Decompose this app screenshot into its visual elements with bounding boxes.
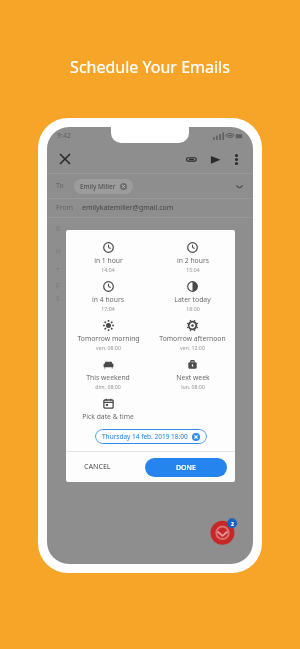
button[interactable]: Tomorrow afternoon [150,316,235,355]
staticText: p [56,280,60,289]
staticText: 17:04 [101,305,115,312]
staticText: Emily Miller [80,182,116,191]
staticText: This weekend [86,373,130,382]
button[interactable]: in 1 hour [66,238,150,277]
staticText: DONE [176,463,196,473]
staticText: H [56,247,61,256]
staticText: 14:04 [101,266,115,273]
staticText: Tomorrow afternoon [159,334,226,343]
button[interactable]: More options [228,151,244,167]
button[interactable]: Next week [150,355,235,394]
staticText: ven. 12:00 [180,344,205,351]
staticText: emilykatemiller@gmail.com [82,203,174,213]
button[interactable]: in 2 hours [150,238,235,277]
button[interactable]: Tomorrow morning [66,316,150,355]
button[interactable]: Attach [182,150,200,168]
staticText: S [56,294,60,303]
button[interactable]: Send [206,150,224,168]
staticText: in 2 hours [177,256,209,265]
staticText: in 1 hour [94,256,123,265]
button[interactable]: Pick date & time [66,394,150,425]
staticText: in 4 hours [92,295,124,304]
staticText: Tomorrow morning [77,334,140,343]
staticText: 15:04 [186,266,200,273]
staticText: Thursday 14 feb. 2019 18:00 [102,432,188,441]
staticText: From [56,203,74,213]
staticText: Next week [176,373,210,382]
button[interactable]: CANCEL [74,457,121,477]
staticText: 9:42 [57,131,71,141]
staticText: To [56,181,64,191]
button[interactable]: This weekend [66,355,150,394]
button[interactable]: Expand recipients [235,182,244,191]
staticText: 2 [231,521,234,528]
button[interactable]: Later today [150,277,235,316]
staticText: T [56,266,60,275]
button[interactable]: DONE [145,458,227,477]
staticText: ven. 08:00 [96,344,121,351]
button[interactable]: Emily Miller [74,179,133,194]
staticText: Schedule Your Emails [70,56,230,78]
staticText: Pick date & time [82,412,134,421]
staticText: lun. 08:00 [181,383,205,390]
button[interactable]: Thursday 14 feb. 2019 18:00 [95,429,207,444]
staticText: CANCEL [84,462,111,472]
button[interactable]: in 4 hours [66,277,150,316]
staticText: Later today [174,295,211,304]
button[interactable]: Boomerang [209,516,239,546]
staticText: 18:00 [186,305,200,312]
staticText: B [56,224,61,233]
staticText: dim. 08:00 [95,383,121,390]
button[interactable]: Close [56,150,74,168]
